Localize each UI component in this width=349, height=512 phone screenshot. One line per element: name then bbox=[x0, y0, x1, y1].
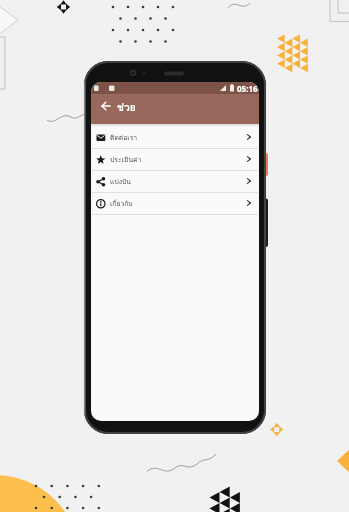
staticText: เกี่ยวกับ bbox=[110, 198, 133, 209]
button[interactable]: เกี่ยวกับ bbox=[91, 193, 259, 214]
button[interactable]: ติดต่อเรา bbox=[91, 127, 259, 148]
staticText: ประเมินค่า bbox=[110, 154, 142, 165]
button[interactable]: ประเมินค่า bbox=[91, 149, 259, 170]
staticText: แบ่งปัน bbox=[110, 176, 131, 187]
staticText: 05:16 bbox=[237, 83, 258, 94]
staticText: ช่วย bbox=[117, 99, 136, 115]
staticText: ติดต่อเรา bbox=[110, 132, 138, 143]
button[interactable] bbox=[101, 101, 111, 111]
button[interactable]: แบ่งปัน bbox=[91, 171, 259, 192]
